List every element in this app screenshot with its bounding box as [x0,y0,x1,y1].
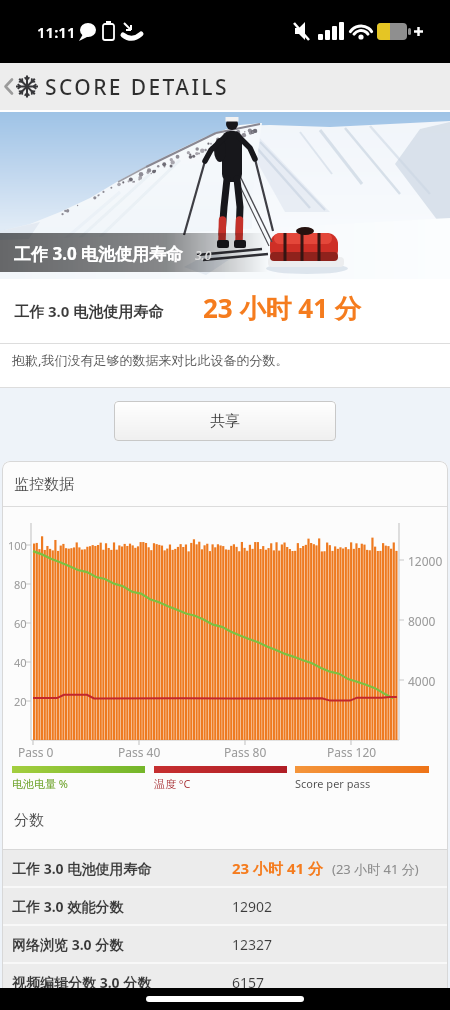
staticText: 8000 [408,613,436,629]
staticText: Pass 80 [224,744,267,760]
staticText: SCORE DETAILS [45,73,229,102]
staticText: 网络浏览 3.0 分数 [12,935,124,954]
staticText: 23 小时 41 分 [203,290,361,326]
staticText: 工作 3.0 效能分数 [12,897,124,916]
staticText: 视频编辑分数 3.0 分数 [12,973,152,992]
staticText: 23 小时 41 分 [232,858,324,878]
button[interactable]: 视频编辑分数 3.0 分数 [2,964,448,1000]
staticText: 60 [14,616,27,631]
staticText: 4000 [408,673,436,689]
button[interactable]: 共享 [114,401,336,441]
staticText: 12327 [232,935,273,954]
staticText: 11:11 [37,22,76,42]
button[interactable]: 工作 3.0 电池使用寿命 [2,850,448,886]
button[interactable]: 网络浏览 3.0 分数 [2,926,448,962]
staticText: 6157 [232,973,265,992]
staticText: 电池电量 % [12,776,69,791]
staticText: 20 [14,694,27,709]
staticText: 40 [14,655,27,670]
staticText: 工作 3.0 电池使用寿命 [14,242,184,265]
button[interactable]: 工作 3.0 效能分数 [2,888,448,924]
staticText: 80 [14,577,27,592]
staticText: 12902 [232,897,273,916]
staticText: 共享 [210,412,240,431]
staticText: 工作 3.0 电池使用寿命 [12,859,152,878]
staticText: Pass 0 [18,744,54,760]
button[interactable] [0,63,40,110]
staticText: (23 小时 41 分) [332,860,419,878]
staticText: Score per pass [295,776,371,791]
staticText: Pass 120 [327,744,377,760]
staticText: 工作 3.0 电池使用寿命 [14,301,164,321]
staticText: 分数 [14,811,44,830]
staticText: 12000 [408,553,443,569]
staticText: 温度 °C [154,776,191,791]
staticText: 100 [8,538,27,553]
staticText: 3.0 [195,247,212,263]
staticText: 抱歉,我们没有足够的数据来对比此设备的分数。 [12,351,289,369]
staticText: 监控数据 [14,475,74,494]
staticText: Pass 40 [118,744,161,760]
